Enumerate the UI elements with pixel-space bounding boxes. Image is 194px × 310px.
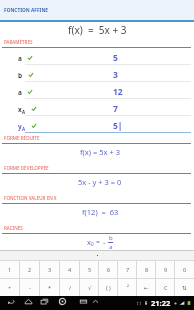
staticText: - (29, 284, 31, 291)
staticText: 4 (68, 266, 72, 273)
staticText: FORME DÉVELOPPÉE (4, 165, 49, 171)
staticText: 1 (8, 266, 12, 273)
staticText: PARAMÈTRES (4, 39, 33, 45)
staticText: 3 (113, 69, 118, 80)
staticText: 5x - y + 3 = 0 (78, 177, 122, 187)
staticText: ( ) (106, 284, 111, 291)
button[interactable]: / (60, 279, 80, 296)
button[interactable]: 9 (156, 261, 175, 278)
button[interactable]: 0 (175, 261, 194, 278)
staticText: - (103, 237, 106, 247)
staticText: = (96, 237, 101, 247)
staticText: + (8, 284, 12, 291)
staticText: a (18, 88, 22, 97)
button[interactable]: b (0, 65, 194, 82)
button[interactable]: 8 (137, 261, 156, 278)
staticText: 8 (145, 266, 149, 273)
button[interactable]: FORME DÉVELOPPÉE (0, 163, 194, 193)
button[interactable]: Screenshot (57, 296, 67, 306)
staticText: √ (88, 285, 92, 291)
button[interactable]: ⇅ (175, 279, 194, 296)
staticText: C (164, 284, 168, 291)
staticText: y (18, 122, 22, 131)
button[interactable]: * (40, 279, 60, 296)
staticText: 7 (126, 266, 130, 273)
button[interactable]: x (0, 99, 194, 116)
button[interactable]: a (0, 82, 194, 99)
staticText: 5| (113, 120, 123, 131)
staticText: RACINES (4, 225, 23, 231)
button[interactable]: Menu (78, 296, 88, 306)
button[interactable]: ² (118, 279, 137, 296)
button[interactable]: ← (137, 279, 156, 296)
button[interactable]: Recent apps (39, 296, 49, 306)
staticText: 2 (28, 266, 32, 273)
staticText: 6 (107, 266, 111, 273)
staticText: * (48, 284, 52, 291)
button[interactable]: 7 (118, 261, 137, 278)
staticText: b (18, 71, 23, 80)
button[interactable]: Back (6, 296, 16, 306)
staticText: 7 (113, 103, 118, 114)
staticText: x (87, 237, 91, 247)
staticText: x (18, 105, 22, 114)
button[interactable]: √ (80, 279, 99, 296)
button[interactable]: Home (23, 296, 33, 306)
button[interactable]: 5 (80, 261, 99, 278)
staticText: 12 (113, 86, 123, 97)
staticText: 0 (91, 241, 94, 247)
staticText: f(x) = 5x + 3 (68, 23, 127, 37)
button[interactable]: 6 (99, 261, 118, 278)
button[interactable]: ( ) (99, 279, 118, 296)
staticText: 9 (164, 266, 168, 273)
button[interactable]: RACINES (0, 223, 194, 253)
button[interactable]: a (0, 48, 194, 65)
staticText: 0 (183, 266, 187, 273)
staticText: ² (127, 284, 129, 291)
button[interactable]: 1 (0, 261, 20, 278)
button[interactable]: 4 (60, 261, 80, 278)
button[interactable]: 2 (20, 261, 40, 278)
staticText: a (18, 54, 22, 63)
staticText: a (109, 243, 113, 250)
button[interactable]: FORME RÉDUITE (0, 133, 194, 163)
button[interactable]: 3 (40, 261, 60, 278)
button[interactable]: + (0, 279, 20, 296)
staticText: FONCTION VALEUR EN X (4, 195, 57, 201)
staticText: A (22, 109, 26, 115)
staticText: f(12) = 63 (82, 207, 119, 217)
staticText: / (69, 284, 72, 291)
button[interactable]: y (0, 116, 194, 133)
staticText: FONCTION AFFINE (4, 7, 49, 14)
staticText: 21:22 (151, 298, 171, 308)
staticText: 5 (113, 52, 118, 63)
button[interactable]: - (20, 279, 40, 296)
staticText: f(x) = 5x + 3 (80, 147, 120, 157)
staticText: 5 (88, 266, 92, 273)
staticText: A (22, 126, 26, 132)
staticText: ⇅ (182, 285, 187, 291)
button[interactable]: Hide keyboard (90, 296, 100, 306)
button[interactable]: FONCTION AFFINE (0, 0, 194, 20)
button[interactable]: FONCTION VALEUR EN X (0, 193, 194, 223)
staticText: b (109, 234, 113, 242)
staticText: 3 (48, 266, 52, 273)
button[interactable]: C (156, 279, 175, 296)
staticText: ← (144, 285, 149, 291)
staticText: FORME RÉDUITE (4, 135, 40, 141)
